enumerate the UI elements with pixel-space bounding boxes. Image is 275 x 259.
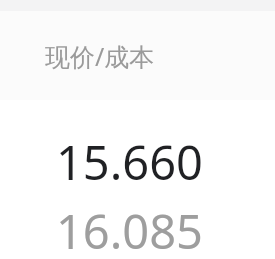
button[interactable]: 现价/成本 — [0, 11, 275, 100]
staticText: 16.085 — [55, 199, 203, 259]
button[interactable]: 15.660 — [0, 100, 275, 259]
staticText: 现价/成本 — [45, 39, 155, 73]
staticText: 15.660 — [55, 130, 203, 194]
